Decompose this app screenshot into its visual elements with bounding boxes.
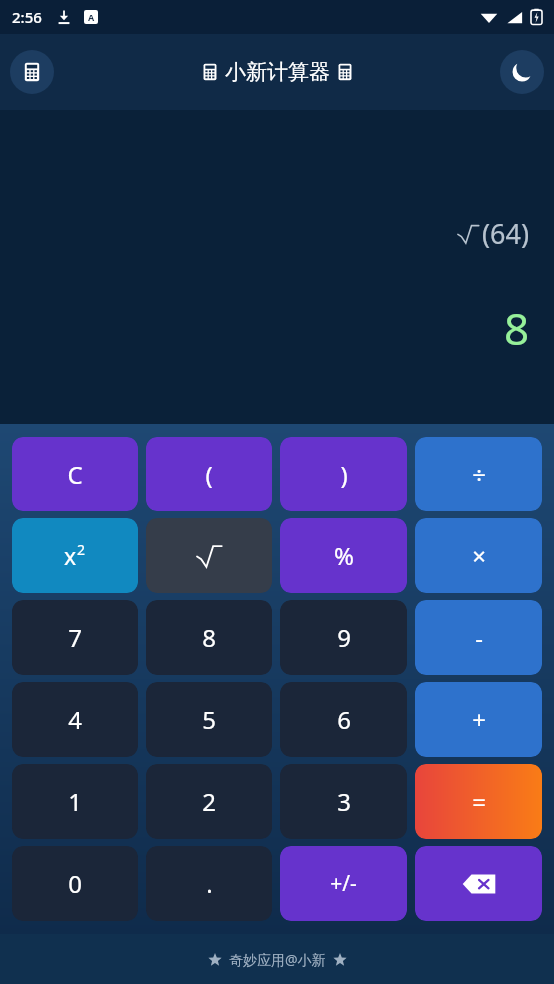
staticText: ): [340, 458, 348, 491]
staticText: +: [472, 703, 486, 736]
staticText: 5: [202, 703, 216, 736]
staticText: +/-: [330, 869, 357, 898]
staticText: ×: [472, 539, 486, 572]
button[interactable]: .: [146, 846, 272, 921]
button[interactable]: 3: [280, 764, 407, 839]
staticText: 2: [77, 540, 86, 559]
staticText: C: [67, 458, 83, 491]
button[interactable]: Calculator mode: [10, 50, 54, 94]
staticText: ÷: [472, 458, 486, 491]
staticText: x: [64, 540, 77, 571]
button[interactable]: Square root: [146, 518, 272, 593]
button[interactable]: 2: [146, 764, 272, 839]
button[interactable]: 1: [12, 764, 138, 839]
staticText: (64): [482, 215, 530, 252]
button[interactable]: ): [280, 437, 407, 511]
staticText: .: [206, 867, 213, 900]
staticText: 6: [337, 703, 351, 736]
staticText: 4: [68, 703, 82, 736]
button[interactable]: 5: [146, 682, 272, 757]
button[interactable]: ×: [415, 518, 542, 593]
button[interactable]: x: [12, 518, 138, 593]
staticText: 8: [504, 298, 530, 358]
button[interactable]: 0: [12, 846, 138, 921]
staticText: 7: [68, 621, 82, 654]
button[interactable]: Backspace: [415, 846, 542, 921]
staticText: 奇妙应用@小新: [229, 950, 326, 969]
staticText: 1: [68, 785, 82, 818]
staticText: =: [472, 785, 486, 818]
staticText: 8: [202, 621, 216, 654]
button[interactable]: ÷: [415, 437, 542, 511]
staticText: A: [88, 11, 95, 23]
staticText: 2:56: [12, 7, 42, 27]
staticText: 小新计算器: [225, 59, 330, 85]
button[interactable]: 9: [280, 600, 407, 675]
button[interactable]: +/-: [280, 846, 407, 921]
staticText: 3: [337, 785, 351, 818]
staticText: (: [205, 458, 213, 491]
staticText: 0: [68, 867, 82, 900]
staticText: -: [475, 621, 483, 654]
button[interactable]: 4: [12, 682, 138, 757]
button[interactable]: =: [415, 764, 542, 839]
button[interactable]: 6: [280, 682, 407, 757]
button[interactable]: +: [415, 682, 542, 757]
button[interactable]: (: [146, 437, 272, 511]
button[interactable]: C: [12, 437, 138, 511]
staticText: 9: [337, 621, 351, 654]
button[interactable]: 7: [12, 600, 138, 675]
button[interactable]: -: [415, 600, 542, 675]
staticText: 2: [202, 785, 216, 818]
button[interactable]: %: [280, 518, 407, 593]
button[interactable]: Toggle dark mode: [500, 50, 544, 94]
button[interactable]: 8: [146, 600, 272, 675]
staticText: %: [334, 539, 354, 572]
